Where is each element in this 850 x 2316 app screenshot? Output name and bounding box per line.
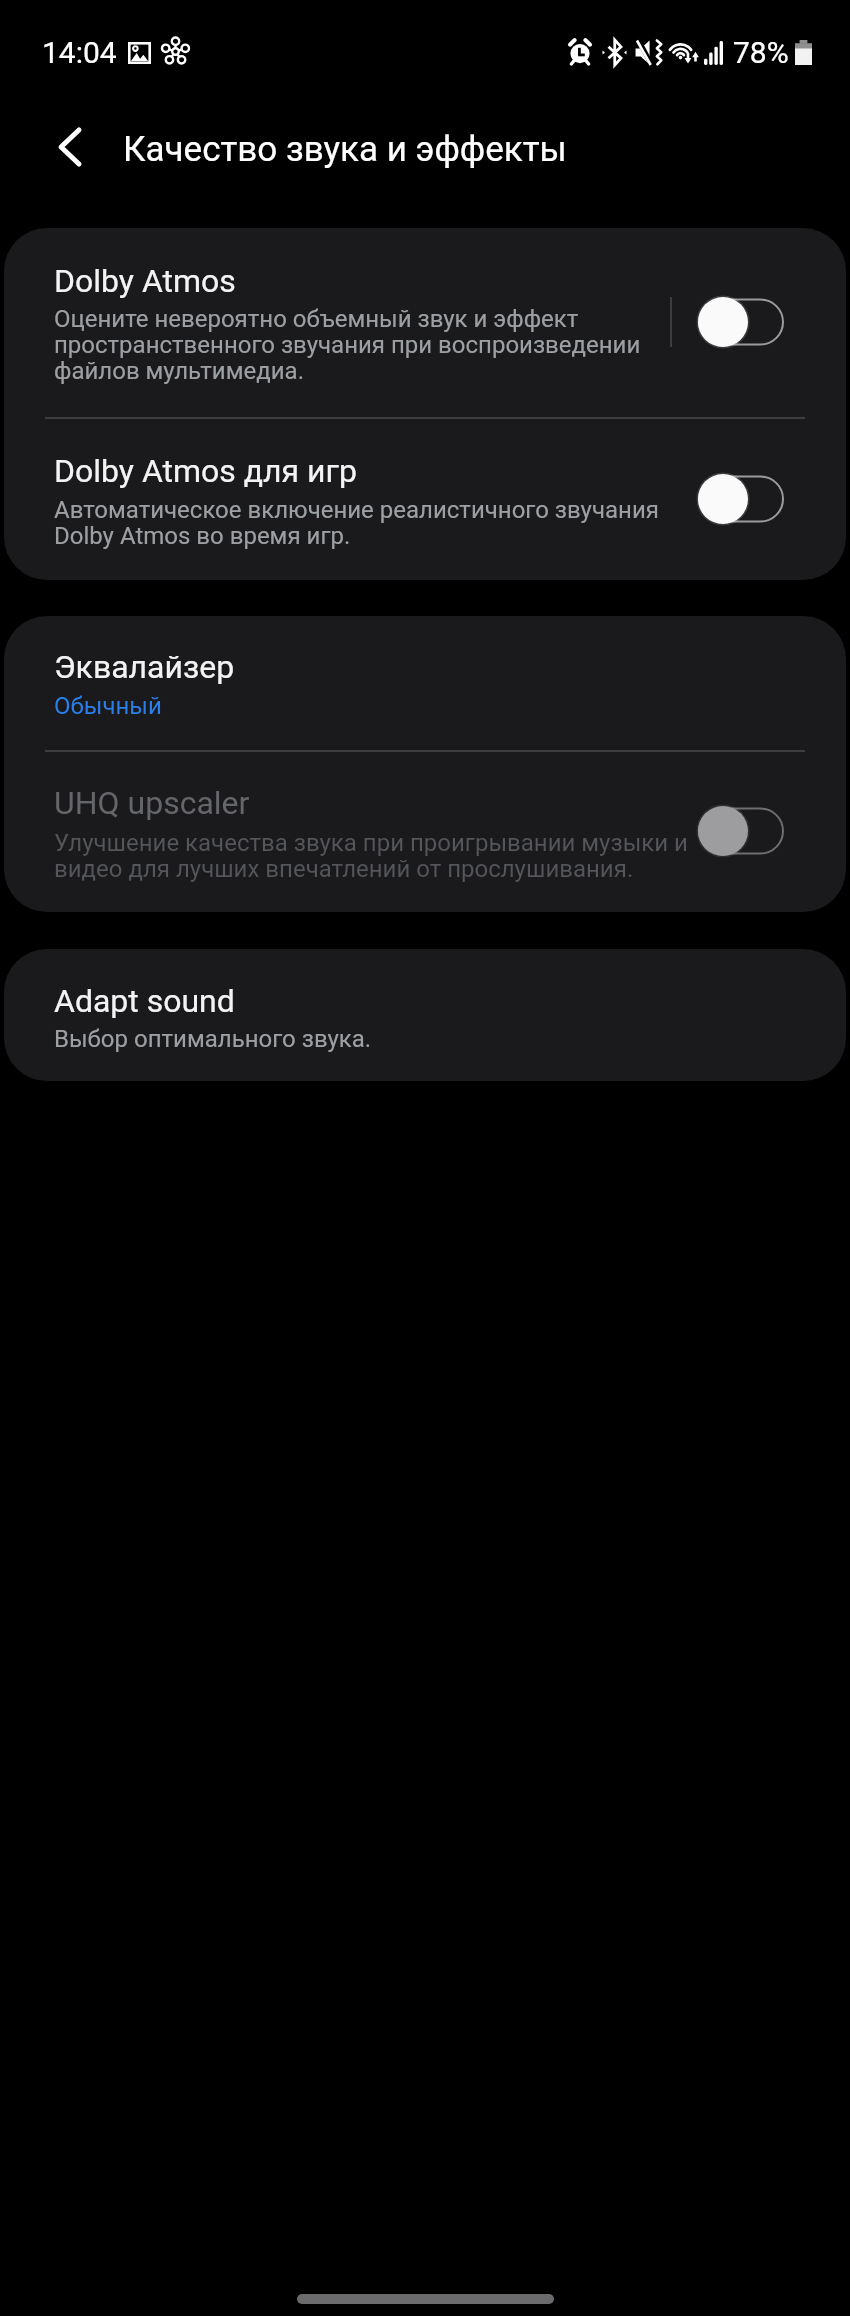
button[interactable]: Dolby Atmos switch — [698, 296, 784, 348]
staticText: 14:04 — [42, 36, 117, 70]
staticText: Качество звука и эффекты — [123, 128, 567, 170]
button[interactable] — [4, 616, 846, 750]
staticText: Улучшение качества звука при проигрывани… — [54, 830, 704, 882]
button[interactable]: Back — [26, 103, 114, 191]
staticText: UHQ upscaler — [54, 785, 250, 822]
staticText: Выбор оптимального звука. — [54, 1026, 704, 1052]
button[interactable]: Dolby Atmos для игр switch — [698, 473, 784, 525]
staticText: Оцените невероятно объемный звук и эффек… — [54, 306, 704, 384]
staticText: 78% — [733, 36, 789, 70]
button[interactable]: UHQ upscaler switch — [698, 805, 784, 857]
staticText: Эквалайзер — [54, 649, 235, 686]
button[interactable] — [4, 228, 846, 417]
staticText: Dolby Atmos — [54, 263, 236, 300]
staticText: Dolby Atmos для игр — [54, 453, 357, 490]
staticText: Adapt sound — [54, 983, 235, 1020]
button[interactable] — [4, 419, 846, 580]
staticText: Обычный — [54, 693, 704, 719]
button[interactable] — [4, 949, 846, 1081]
staticText: Автоматическое включение реалистичного з… — [54, 497, 704, 549]
button[interactable] — [4, 752, 846, 912]
